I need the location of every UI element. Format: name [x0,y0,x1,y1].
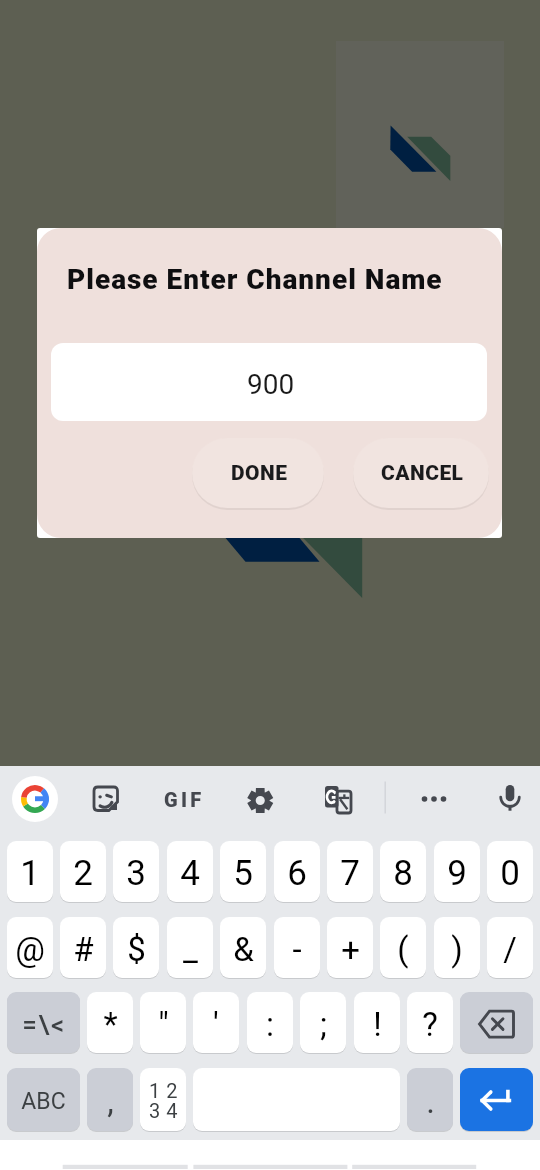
button[interactable]: Stickers [85,778,127,820]
staticText: 9 [447,853,467,894]
staticText: / [503,930,517,969]
button[interactable]: _ [167,917,213,978]
button[interactable]: 5 [220,841,266,902]
button[interactable]: 2 [60,841,106,902]
button[interactable]: - [274,917,320,978]
button[interactable]: ? [407,992,453,1053]
staticText: Please Enter Channel Name [67,263,443,296]
button[interactable]: 1 [7,841,53,902]
button[interactable]: ! [354,992,400,1053]
button[interactable]: + [327,917,373,978]
staticText: DONE [231,461,288,486]
staticText: 1 2 3 4 [149,1079,178,1123]
button[interactable]: " [140,992,186,1053]
button[interactable]: 900 [51,343,487,421]
button[interactable]: * [87,992,133,1053]
button[interactable]: 4 [167,841,213,902]
staticText: _ [183,930,198,969]
staticText: # [73,930,94,969]
button[interactable]: 9 [434,841,480,902]
button[interactable]: : [247,992,293,1053]
staticText: ' [213,1005,219,1044]
staticText: . [426,1082,435,1121]
staticText: , [107,1082,114,1121]
staticText: ( [397,930,409,969]
button[interactable]: ( [380,917,426,978]
staticText: @ [15,930,45,969]
button[interactable]: 7 [327,841,373,902]
staticText: ; [320,1005,327,1044]
button[interactable]: 0 [487,841,533,902]
button[interactable]: =\< [7,992,80,1053]
staticText: ? [422,1005,438,1044]
staticText: $ [127,930,146,969]
button[interactable]: & [220,917,266,978]
button[interactable]: Google [12,776,58,822]
button[interactable]: ABC [7,1068,80,1131]
staticText: 4 [180,853,200,894]
staticText: 7 [340,853,360,894]
button[interactable]: ) [434,917,480,978]
button[interactable]: # [60,917,106,978]
button[interactable]: DONE [192,438,324,508]
staticText: ) [451,930,463,969]
staticText: 1 [20,853,40,894]
staticText: 6 [287,853,307,894]
button[interactable]: GIF [158,786,210,812]
button[interactable]: ' [193,992,239,1053]
button[interactable]: 6 [274,841,320,902]
staticText: 5 [233,853,253,894]
button[interactable]: 8 [380,841,426,902]
button[interactable]: Settings [238,778,283,823]
staticText: =\< [22,1010,66,1040]
button[interactable]: @ [7,917,53,978]
button[interactable]: Voice input [491,776,529,821]
staticText: + [341,930,360,969]
button[interactable]: More options [412,784,457,814]
staticText: & [233,930,254,969]
button[interactable]: CANCEL [353,438,489,508]
staticText: ! [373,1005,382,1044]
staticText: 8 [393,853,413,894]
button[interactable]: ; [300,992,346,1053]
staticText: : [266,1005,274,1044]
staticText: 2 [73,853,93,894]
button[interactable]: . [407,1068,453,1131]
button[interactable]: 1 2 3 4 [140,1068,186,1131]
button[interactable]: , [87,1068,133,1131]
button[interactable]: Translate [316,777,360,822]
staticText: * [103,1005,118,1044]
button[interactable]: $ [113,917,159,978]
button[interactable]: / [487,917,533,978]
staticText: " [158,1005,169,1044]
staticText: ABC [21,1088,66,1115]
staticText: GIF [164,788,205,811]
button[interactable]: Enter [460,1068,533,1131]
staticText: 900 [247,368,295,401]
staticText: CANCEL [381,461,464,486]
staticText: - [292,930,302,969]
staticText: 0 [500,853,520,894]
button[interactable]: Backspace [460,992,533,1053]
button[interactable]: 3 [113,841,159,902]
staticText: 3 [126,853,146,894]
